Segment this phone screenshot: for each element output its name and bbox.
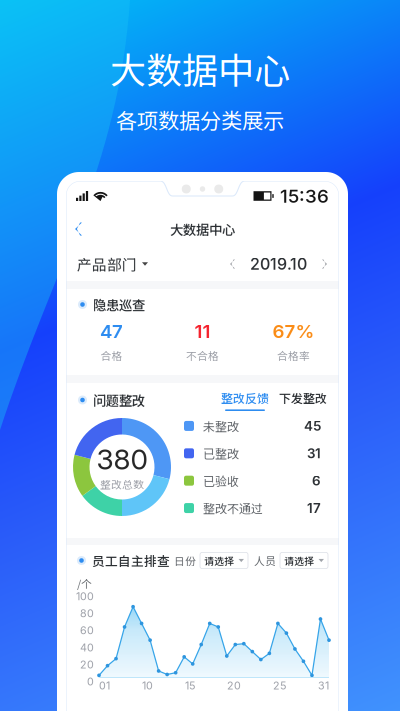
button[interactable]: Previous month	[224, 253, 241, 274]
staticText: 大数据中心	[110, 42, 290, 94]
staticText: 整改不通过	[203, 499, 263, 517]
staticText: 25	[273, 679, 286, 692]
staticText: 100	[76, 590, 94, 603]
staticText: /个	[77, 575, 92, 591]
staticText: 60	[80, 624, 94, 637]
staticText: 请选择	[204, 553, 234, 568]
staticText: 17	[307, 500, 321, 516]
staticText: 已整改	[203, 445, 239, 462]
staticText: 15:36	[280, 185, 329, 207]
staticText: 大数据中心	[170, 219, 235, 239]
staticText: 合格	[100, 348, 122, 363]
staticText: 45	[304, 418, 321, 434]
staticText: 31	[318, 679, 329, 692]
staticText: 问题整改	[93, 390, 145, 410]
staticText: 20	[227, 679, 241, 692]
staticText: 已验收	[203, 472, 239, 489]
button[interactable]: 请选择	[200, 552, 248, 568]
staticText: 请选择	[284, 553, 314, 568]
staticText: 40	[80, 641, 94, 654]
staticText: 01	[99, 679, 110, 692]
button[interactable]: 下发整改	[279, 389, 327, 411]
staticText: 未整改	[203, 417, 239, 435]
staticText: 6	[312, 473, 321, 489]
staticText: 47	[100, 320, 123, 343]
button[interactable]: Next month	[316, 253, 333, 274]
staticText: 11	[194, 320, 210, 343]
staticText: 合格率	[277, 348, 310, 363]
staticText: 20	[80, 658, 94, 671]
staticText: 下发整改	[279, 389, 327, 406]
staticText: 67%	[272, 320, 314, 343]
staticText: 各项数据分类展示	[116, 104, 284, 135]
staticText: 员工自主排查	[92, 551, 170, 570]
button[interactable]: 产品部门	[66, 247, 159, 281]
staticText: 15	[185, 679, 195, 692]
staticText: 整改总数	[100, 476, 144, 492]
staticText: 不合格	[186, 348, 219, 363]
button[interactable]: 请选择	[280, 552, 328, 568]
staticText: 380	[96, 442, 147, 476]
staticText: 产品部门	[77, 253, 137, 275]
staticText: 80	[80, 607, 94, 620]
staticText: 整改反馈	[221, 389, 269, 406]
staticText: 10	[142, 679, 153, 692]
button[interactable]: Back	[66, 214, 91, 243]
staticText: 31	[307, 445, 321, 461]
staticText: 人员	[254, 553, 276, 568]
staticText: 日份	[174, 553, 196, 568]
staticText: 2019.10	[250, 254, 307, 274]
staticText: 隐患巡查	[93, 295, 145, 314]
staticText: 0	[87, 675, 94, 688]
button[interactable]: 整改反馈	[221, 389, 269, 411]
